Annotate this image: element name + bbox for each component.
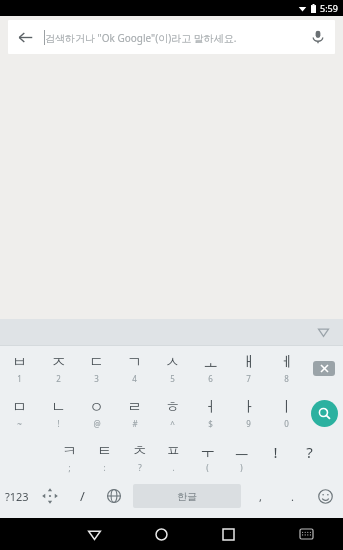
staticText: ㅔ <box>279 353 294 372</box>
button[interactable]: ㅋ <box>52 436 87 478</box>
button[interactable]: ?123 <box>0 478 34 514</box>
staticText: ㅌ <box>97 442 112 461</box>
staticText: ! <box>57 418 60 429</box>
staticText: ㅋ <box>62 442 77 461</box>
staticText: 1 <box>17 373 22 384</box>
button[interactable]: ㄴ <box>39 391 77 436</box>
button[interactable]: Move cursor <box>34 478 66 514</box>
button[interactable]: ! <box>258 436 292 478</box>
staticText: 7 <box>246 373 251 384</box>
staticText: ㅐ <box>241 353 256 372</box>
staticText: 5:59 <box>320 2 338 14</box>
staticText: ㄱ <box>127 353 142 372</box>
staticText: ㅍ <box>166 442 181 461</box>
staticText: ㅏ <box>241 398 256 417</box>
staticText: ㄴ <box>51 398 66 417</box>
staticText: 8 <box>284 373 289 384</box>
staticText: ^ <box>170 418 175 429</box>
staticText: ㅣ <box>279 398 294 417</box>
staticText: 5 <box>170 373 175 384</box>
staticText: ? <box>138 462 142 473</box>
button[interactable]: Backspace <box>305 346 343 391</box>
button[interactable]: Emoji <box>308 478 343 514</box>
button[interactable]: Keyboard <box>283 518 329 550</box>
staticText: ㅜ <box>200 442 215 461</box>
staticText: ?123 <box>5 489 29 504</box>
staticText: ( <box>206 462 209 473</box>
staticText: @ <box>93 418 101 429</box>
button[interactable]: Recents <box>205 518 251 550</box>
button[interactable]: ㄱ <box>115 346 153 391</box>
staticText: . <box>172 462 175 473</box>
staticText: , <box>259 489 262 504</box>
staticText: 한글 <box>177 490 197 503</box>
staticText: 6 <box>208 373 213 384</box>
button[interactable]: . <box>276 478 308 514</box>
button[interactable]: Hide suggestions <box>311 320 335 344</box>
button[interactable]: 한글 <box>133 484 241 508</box>
staticText: / <box>80 487 85 505</box>
button[interactable]: ㅓ <box>191 391 229 436</box>
staticText: $ <box>208 418 213 429</box>
button[interactable]: ㅌ <box>87 436 122 478</box>
button[interactable]: ㅊ <box>122 436 156 478</box>
button[interactable]: ㅅ <box>153 346 191 391</box>
staticText: 0 <box>284 418 289 429</box>
staticText: ㅊ <box>132 442 147 461</box>
staticText: ? <box>306 442 313 462</box>
staticText: ㅇ <box>89 398 104 417</box>
staticText: ! <box>273 442 278 462</box>
staticText: # <box>132 418 138 429</box>
button[interactable]: ㅁ <box>0 391 39 436</box>
button[interactable]: ? <box>292 436 326 478</box>
button[interactable]: ㅜ <box>190 436 224 478</box>
button[interactable]: Change language <box>98 478 130 514</box>
button[interactable]: ㅔ <box>267 346 305 391</box>
button[interactable]: ㅏ <box>229 391 267 436</box>
staticText: ~ <box>17 418 22 429</box>
button[interactable]: ㅡ <box>224 436 258 478</box>
button[interactable]: Search <box>305 391 343 436</box>
staticText: ㅁ <box>12 398 27 417</box>
button[interactable]: Voice search <box>301 20 335 54</box>
staticText: ㄷ <box>89 353 104 372</box>
button[interactable]: Back <box>8 20 42 54</box>
staticText: 3 <box>94 373 99 384</box>
staticText: ㅗ <box>203 353 218 372</box>
button[interactable]: ㅍ <box>156 436 190 478</box>
button[interactable]: ㅇ <box>77 391 115 436</box>
staticText: 9 <box>246 418 251 429</box>
button[interactable]: / <box>66 478 98 514</box>
button[interactable]: ㅂ <box>0 346 39 391</box>
button[interactable]: Back <box>72 518 117 550</box>
staticText: ; <box>68 462 71 473</box>
staticText: ㅓ <box>203 398 218 417</box>
button[interactable]: ㅎ <box>153 391 191 436</box>
staticText: ㅈ <box>51 353 66 372</box>
button[interactable]: ㅣ <box>267 391 305 436</box>
button[interactable]: ㅈ <box>39 346 77 391</box>
button[interactable]: ㄷ <box>77 346 115 391</box>
button[interactable]: ㅗ <box>191 346 229 391</box>
staticText: 검색하거나 "Ok Google"(이)라고 말하세요. <box>45 31 237 45</box>
staticText: ㅡ <box>234 442 249 461</box>
staticText: ) <box>240 462 243 473</box>
staticText: ㅂ <box>12 353 27 372</box>
button[interactable]: Home <box>138 518 184 550</box>
staticText: ㄹ <box>127 398 142 417</box>
button[interactable]: , <box>244 478 276 514</box>
staticText: 4 <box>132 373 137 384</box>
staticText: ㅅ <box>165 353 180 372</box>
button[interactable]: ㄹ <box>115 391 153 436</box>
staticText: : <box>103 462 106 473</box>
staticText: 2 <box>56 373 61 384</box>
button[interactable]: ㅐ <box>229 346 267 391</box>
staticText: . <box>291 489 294 504</box>
staticText: ㅎ <box>165 398 180 417</box>
